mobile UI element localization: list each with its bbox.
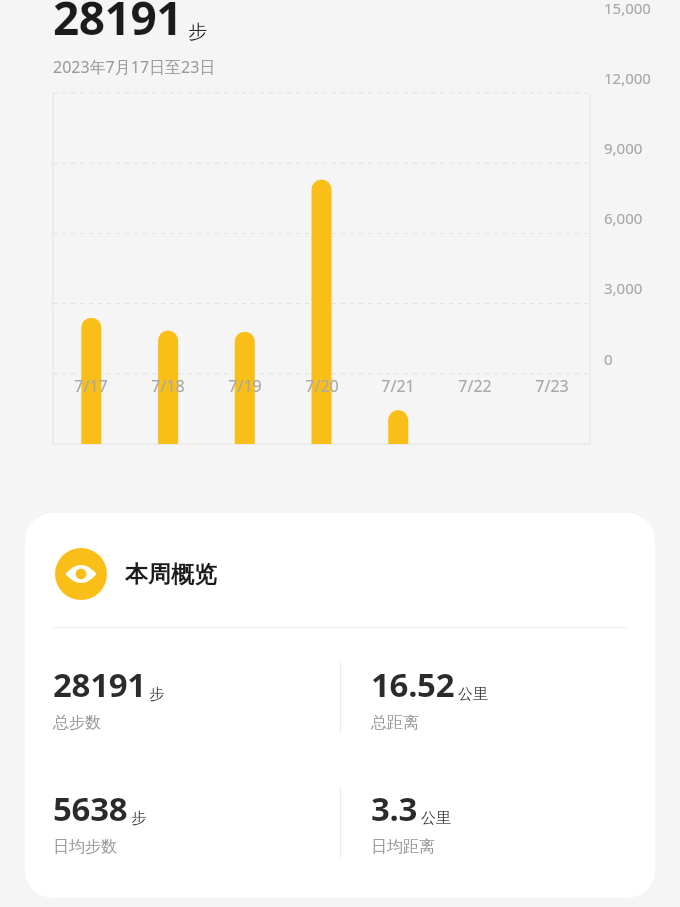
staticText: 7/19 [215, 375, 275, 397]
staticText: 7/22 [445, 375, 505, 397]
staticText: 总距离 [371, 713, 419, 733]
button[interactable]: 16.52 [341, 662, 655, 733]
staticText: 公里 [421, 809, 451, 828]
staticText: 日均步数 [53, 837, 117, 857]
staticText: 28191 [53, 662, 146, 707]
button[interactable]: 5638 [25, 786, 340, 857]
staticText: 步 [188, 20, 207, 44]
staticText: 3.3 [371, 786, 418, 831]
staticText: 28191 [53, 0, 183, 49]
button[interactable]: 本周概览 [25, 513, 655, 627]
staticText: 15,000 [604, 0, 651, 18]
staticText: 3,000 [604, 278, 643, 298]
other: 本周概览 [55, 548, 107, 600]
staticText: 2023年7月17日至23日 [53, 56, 216, 78]
staticText: 本周概览 [125, 560, 217, 589]
staticText: 6,000 [604, 208, 643, 228]
staticText: 9,000 [604, 138, 643, 158]
staticText: 16.52 [371, 662, 455, 707]
staticText: 12,000 [604, 68, 651, 88]
staticText: 步 [149, 685, 164, 704]
staticText: 7/20 [292, 375, 352, 397]
staticText: 7/21 [368, 375, 428, 397]
staticText: 公里 [458, 685, 488, 704]
staticText: 7/18 [138, 375, 198, 397]
button[interactable]: 3.3 [341, 786, 655, 857]
staticText: 7/17 [61, 375, 121, 397]
staticText: 5638 [53, 786, 128, 831]
staticText: 日均距离 [371, 837, 435, 857]
button[interactable]: 28191 [25, 662, 340, 733]
staticText: 7/23 [522, 375, 582, 397]
staticText: 步 [131, 809, 146, 828]
staticText: 0 [604, 349, 613, 369]
staticText: 总步数 [53, 713, 101, 733]
